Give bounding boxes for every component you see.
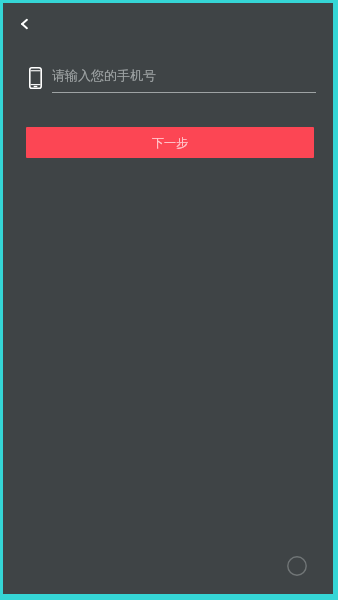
button[interactable]: 下一步: [26, 127, 314, 158]
button[interactable]: Home: [283, 552, 311, 580]
button[interactable]: Back: [9, 8, 41, 40]
staticText: 下一步: [152, 135, 188, 150]
staticText: 请输入您的手机号: [52, 67, 156, 83]
button[interactable]: 请输入您的手机号: [26, 63, 316, 93]
